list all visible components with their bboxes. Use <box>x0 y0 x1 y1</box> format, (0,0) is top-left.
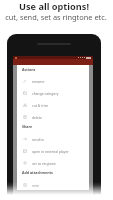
button[interactable]: note <box>17 180 89 190</box>
other: change category <box>23 91 27 95</box>
staticText: set as ringtone <box>32 161 56 166</box>
button[interactable]: set as ringtone <box>17 158 89 168</box>
staticText: Use all options! <box>19 0 89 13</box>
other: delete <box>23 115 27 119</box>
other: open in external player <box>23 149 27 153</box>
staticText: cut & trim <box>32 103 48 108</box>
staticText: Actions <box>22 67 36 72</box>
staticText: Add attachments <box>22 170 53 175</box>
other: set as ringtone <box>23 161 27 165</box>
staticText: delete <box>32 115 42 120</box>
staticText: send to <box>32 137 44 142</box>
staticText: rename <box>32 79 45 84</box>
other: send to <box>23 137 27 141</box>
button[interactable]: change category <box>17 88 89 98</box>
button[interactable]: rename <box>17 76 89 86</box>
staticText: open in external player <box>32 149 69 154</box>
staticText: change category <box>32 91 59 96</box>
staticText: cut, send, set as ringtone etc. <box>5 12 107 22</box>
button[interactable]: cut & trim <box>17 100 89 110</box>
button[interactable]: delete <box>17 112 89 122</box>
other: cut & trim <box>23 103 27 107</box>
staticText: Share <box>22 124 33 129</box>
staticText: note <box>32 183 40 188</box>
button[interactable]: open in external player <box>17 146 89 156</box>
button[interactable]: send to <box>17 134 89 144</box>
other: rename <box>23 79 27 83</box>
other: note <box>23 183 27 187</box>
